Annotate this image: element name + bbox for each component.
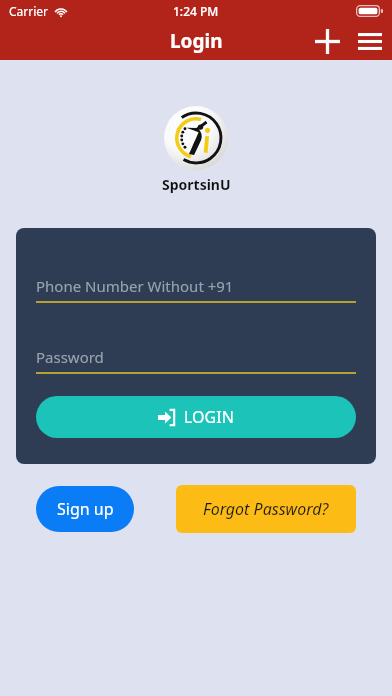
staticText: Forgot Password? [203, 498, 329, 520]
staticText: LOGIN [184, 406, 234, 428]
staticText: Login [170, 28, 223, 54]
button[interactable]: Sign up [36, 486, 134, 532]
button[interactable]: Menu [348, 22, 392, 60]
staticText: Password [36, 347, 104, 367]
staticText: Carrier [9, 3, 49, 19]
button[interactable]: Password [36, 347, 356, 374]
staticText: 1:24 PM [173, 3, 219, 19]
button[interactable]: Phone Number Without +91 [36, 276, 356, 303]
staticText: Sign up [57, 498, 114, 520]
staticText: Phone Number Without +91 [36, 276, 234, 296]
button[interactable]: Add [306, 22, 348, 60]
button[interactable]: LOGIN [36, 396, 356, 438]
button[interactable]: Forgot Password? [176, 485, 356, 533]
staticText: SportsinU [162, 175, 231, 194]
